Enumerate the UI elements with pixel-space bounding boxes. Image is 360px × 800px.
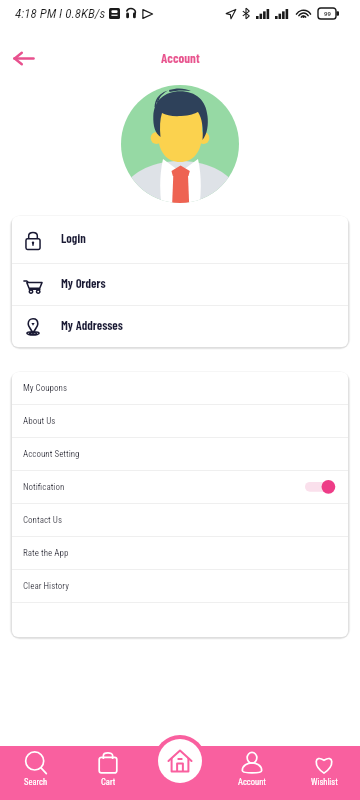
button[interactable]: Account Setting: [12, 438, 348, 470]
button[interactable]: Contact Us: [12, 504, 348, 536]
staticText: Account Setting: [23, 449, 80, 460]
staticText: Notification: [23, 482, 65, 493]
staticText: My Addresses: [61, 317, 123, 332]
button[interactable]: Wishlist: [288, 746, 360, 800]
staticText: My Coupons: [23, 383, 68, 394]
staticText: Search: [24, 777, 48, 787]
button[interactable]: Back: [12, 45, 34, 71]
staticText: Account: [238, 777, 266, 787]
staticText: Rate the App: [23, 548, 69, 559]
staticText: Clear History: [23, 581, 69, 592]
button[interactable]: Notification: [12, 471, 348, 503]
button[interactable]: Notification toggle: [305, 477, 335, 497]
button[interactable]: My Coupons: [12, 372, 348, 404]
staticText: 4:18 PM I 0.8KB/s: [15, 6, 106, 21]
button[interactable]: My Orders: [12, 264, 348, 305]
staticText: Contact Us: [23, 515, 62, 526]
staticText: Login: [61, 230, 86, 245]
staticText: 99: [324, 10, 331, 18]
staticText: Wishlist: [311, 777, 338, 787]
button[interactable]: Clear History: [12, 570, 348, 602]
button[interactable]: Cart: [72, 746, 144, 800]
staticText: My Orders: [61, 275, 106, 290]
button[interactable]: Rate the App: [12, 537, 348, 569]
button[interactable]: Home: [158, 739, 202, 783]
staticText: About Us: [23, 416, 56, 427]
button[interactable]: My Addresses: [12, 306, 348, 347]
staticText: Cart: [101, 777, 116, 787]
button[interactable]: Login: [12, 216, 348, 263]
button[interactable]: Search: [0, 746, 72, 800]
button[interactable]: About Us: [12, 405, 348, 437]
staticText: Account: [161, 50, 200, 66]
button[interactable]: Account: [216, 746, 288, 800]
